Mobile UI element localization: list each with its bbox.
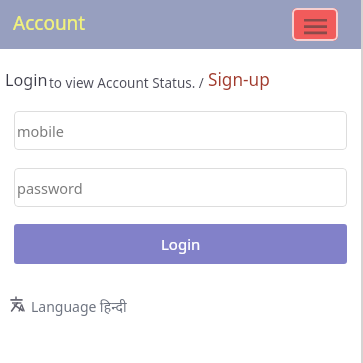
staticText: to view Account Status. / xyxy=(49,74,204,92)
staticText: Login xyxy=(161,234,201,254)
staticText: Sign-up xyxy=(208,68,270,91)
button[interactable]: Login xyxy=(3,67,52,93)
button[interactable]: Sign-up xyxy=(206,66,274,92)
staticText: mobile xyxy=(17,121,64,141)
button[interactable]: mobile xyxy=(14,111,347,150)
staticText: Language हिन्दी xyxy=(31,297,127,316)
staticText: Login xyxy=(5,69,48,91)
button[interactable]: Open navigation menu xyxy=(292,8,338,41)
button[interactable]: Change language to Hindi xyxy=(6,292,136,320)
button[interactable]: Login xyxy=(14,224,347,264)
staticText: Account xyxy=(13,10,86,36)
staticText: password xyxy=(17,178,83,198)
button[interactable]: password xyxy=(14,168,347,207)
